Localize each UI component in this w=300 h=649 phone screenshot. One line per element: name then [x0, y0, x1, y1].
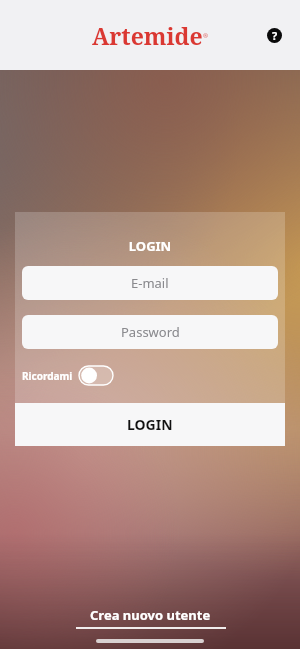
staticText: LOGIN	[22, 237, 278, 255]
staticText: LOGIN	[127, 415, 173, 434]
staticText: Crea nuovo utente	[90, 606, 211, 624]
button[interactable]: Crea nuovo utente	[65, 606, 236, 629]
staticText: E-mail	[131, 274, 169, 292]
button[interactable]: LOGIN	[15, 403, 285, 446]
staticText: Artemide	[92, 20, 203, 51]
button[interactable]: E-mail	[22, 266, 278, 300]
button[interactable]: Help	[260, 21, 288, 49]
button[interactable]: Password	[22, 315, 278, 349]
staticText: ®	[203, 32, 209, 40]
button[interactable]: Ricordami	[22, 366, 113, 385]
staticText: Ricordami	[22, 369, 73, 383]
staticText: Password	[121, 323, 180, 341]
staticText: ?	[272, 28, 278, 43]
